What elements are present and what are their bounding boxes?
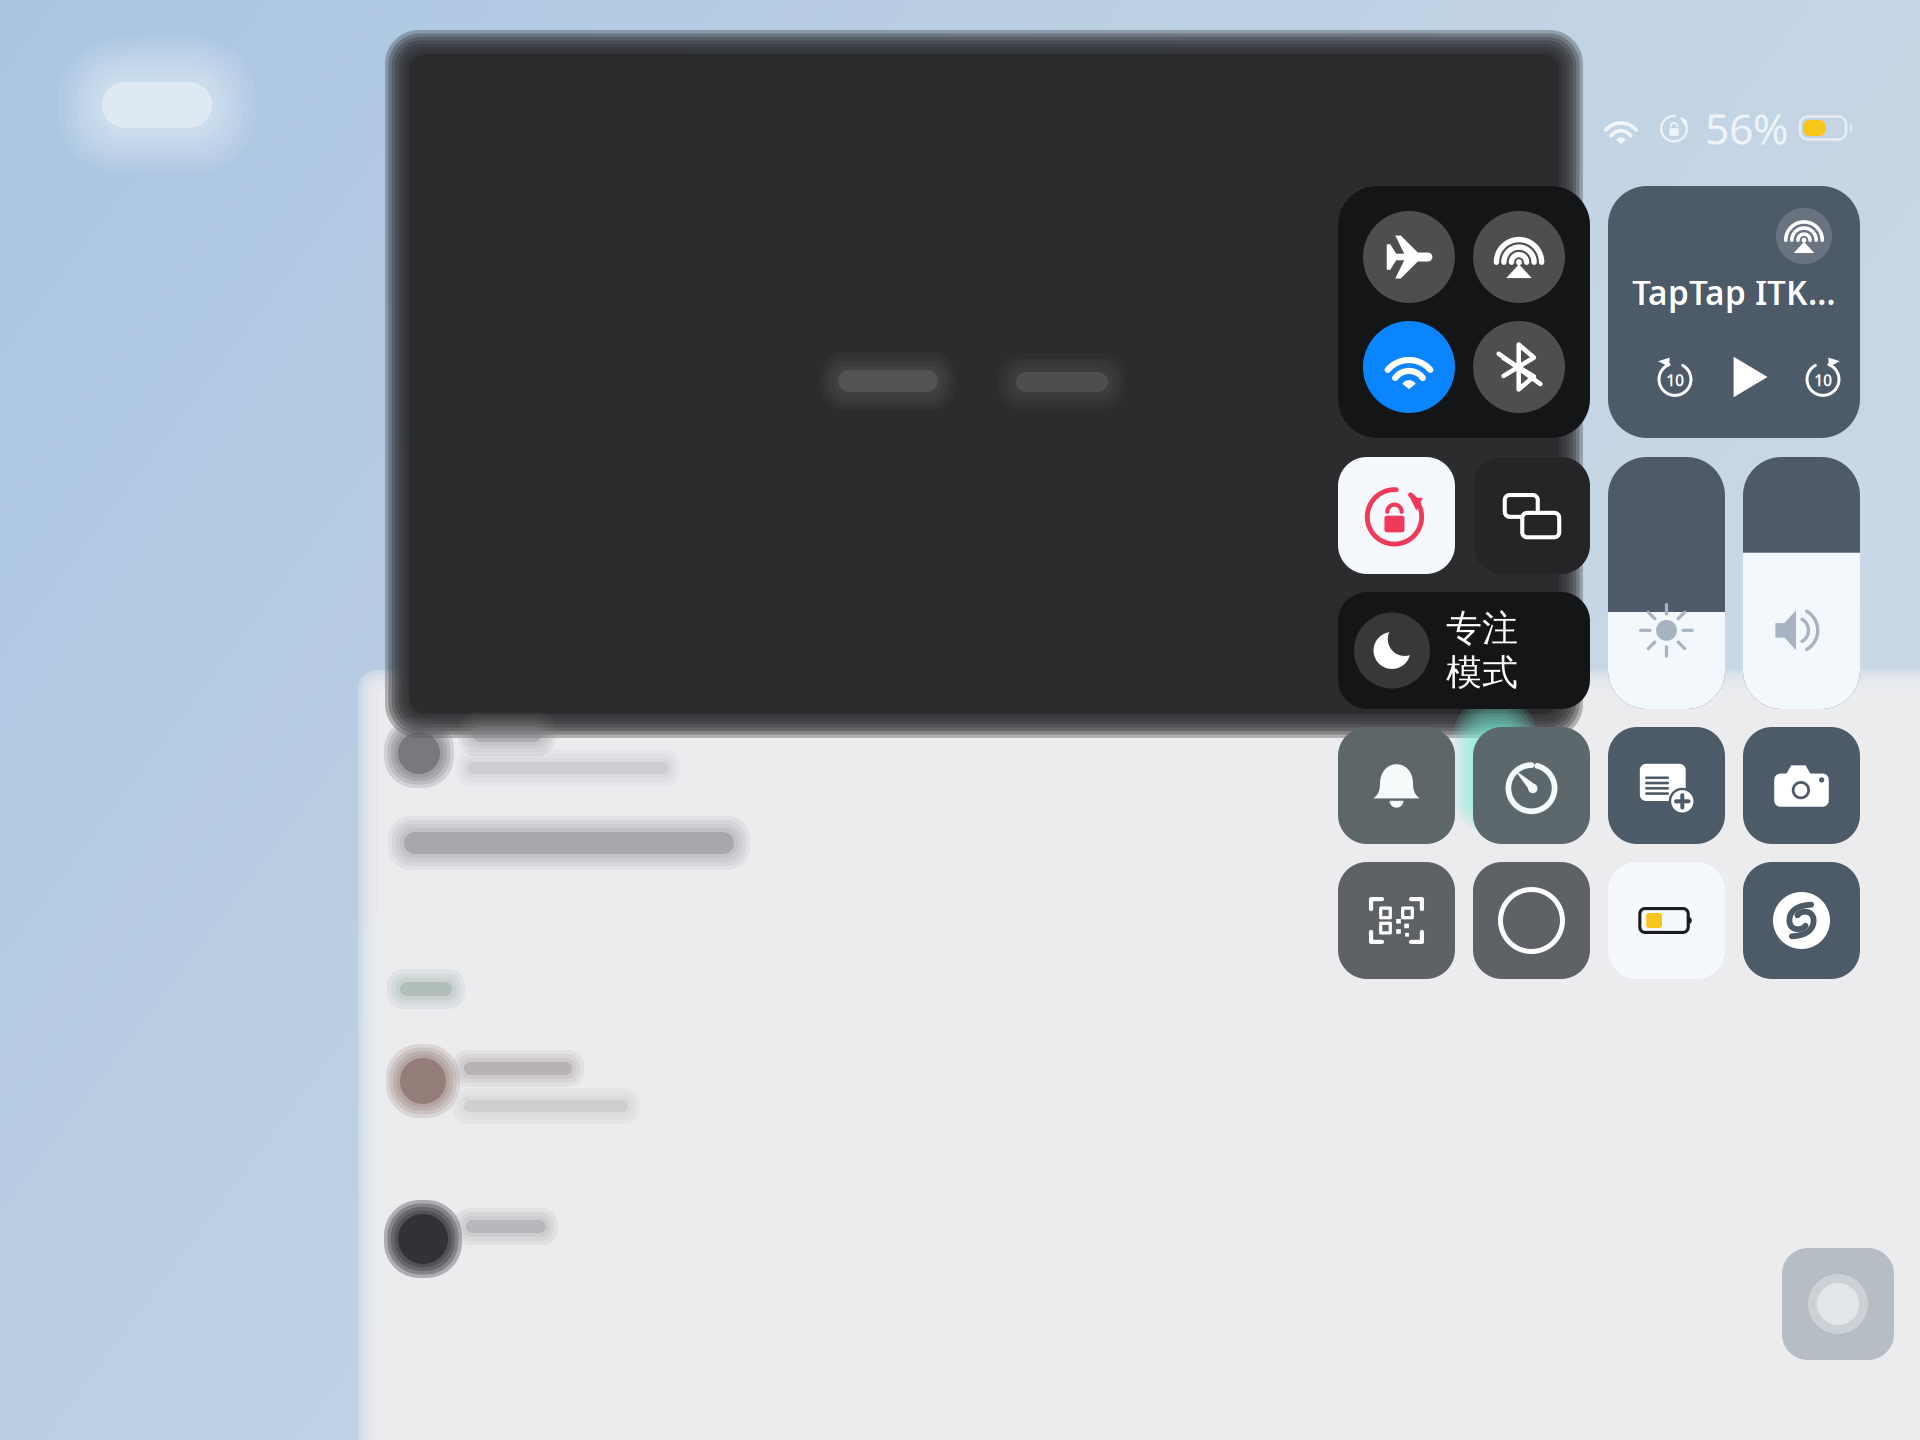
button[interactable]: Low Power Mode — [1608, 862, 1725, 979]
button[interactable]: Timer — [1473, 727, 1590, 844]
button[interactable]: Skip back 10 seconds — [1638, 349, 1712, 405]
button[interactable]: Brightness — [1608, 457, 1725, 709]
button[interactable]: AssistiveTouch — [1782, 1248, 1894, 1360]
button[interactable]: Play — [1712, 349, 1786, 405]
staticText: 专注 模式 — [1446, 606, 1518, 695]
button[interactable]: Volume — [1743, 457, 1860, 709]
button[interactable]: Scan QR Code — [1338, 862, 1455, 979]
button[interactable]: AirDrop — [1473, 211, 1565, 303]
button[interactable]: Screen Recording — [1473, 862, 1590, 979]
button[interactable]: Silent Mode — [1338, 727, 1455, 844]
button[interactable]: Skip forward 10 seconds — [1786, 349, 1860, 405]
button[interactable]: Shazam — [1743, 862, 1860, 979]
button[interactable]: Now Playing: TapTap ITK — [1608, 186, 1860, 438]
button[interactable]: AirPlay — [1776, 208, 1832, 264]
button[interactable]: Airplane Mode — [1363, 211, 1455, 303]
staticText: 10 — [1666, 369, 1684, 391]
button[interactable]: Screen Mirroring — [1473, 457, 1590, 574]
staticText: 10 — [1814, 369, 1832, 391]
button[interactable]: Rotation Lock — [1338, 457, 1455, 574]
button[interactable]: Quick Note — [1608, 727, 1725, 844]
button[interactable]: Wi-Fi — [1363, 321, 1455, 413]
staticText: 56% — [1705, 100, 1788, 156]
staticText: TapTap ITK… — [1632, 270, 1836, 314]
button[interactable]: Focus Mode — [1338, 592, 1590, 709]
button[interactable]: Bluetooth — [1473, 321, 1565, 413]
button[interactable]: Camera — [1743, 727, 1860, 844]
